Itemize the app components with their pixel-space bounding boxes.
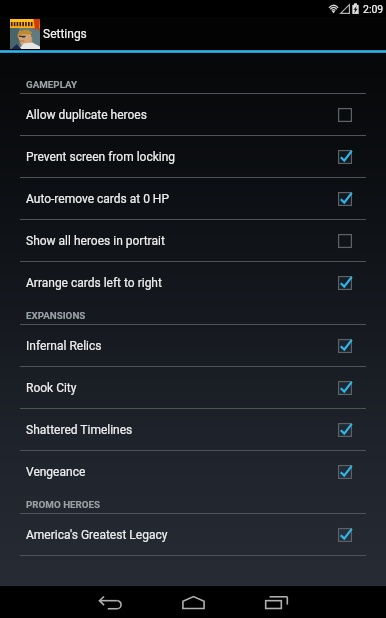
- button[interactable]: America's Greatest Legacy: [0, 514, 386, 555]
- staticText: Rook City: [26, 381, 77, 395]
- button[interactable]: Settings: [0, 17, 386, 50]
- staticText: Arrange cards left to right: [26, 276, 162, 290]
- button[interactable]: Prevent screen from locking: [0, 136, 386, 177]
- button[interactable]: Rook City: [0, 367, 386, 408]
- staticText: Infernal Relics: [26, 339, 102, 353]
- button[interactable]: Vengeance: [0, 451, 386, 492]
- staticText: Allow duplicate heroes: [26, 108, 147, 122]
- staticText: Prevent screen from locking: [26, 150, 176, 164]
- staticText: Auto-remove cards at 0 HP: [26, 192, 170, 206]
- button[interactable]: Back: [69, 586, 152, 618]
- button[interactable]: Recent apps: [235, 586, 318, 618]
- button[interactable]: Auto-remove cards at 0 HP: [0, 178, 386, 219]
- staticText: EXPANSIONS: [26, 310, 86, 321]
- button[interactable]: Shattered Timelines: [0, 409, 386, 450]
- staticText: GAMEPLAY: [26, 79, 78, 90]
- button[interactable]: Arrange cards left to right: [0, 262, 386, 303]
- button[interactable]: Allow duplicate heroes: [0, 94, 386, 135]
- staticText: PROMO HEROES: [26, 499, 101, 510]
- staticText: Settings: [43, 27, 87, 41]
- staticText: Vengeance: [26, 465, 86, 479]
- staticText: America's Greatest Legacy: [26, 528, 168, 542]
- button[interactable]: Show all heroes in portrait: [0, 220, 386, 261]
- staticText: Shattered Timelines: [26, 423, 133, 437]
- button[interactable]: Infernal Relics: [0, 325, 386, 366]
- button[interactable]: Home: [152, 586, 235, 618]
- staticText: 2:09: [363, 3, 384, 15]
- staticText: Show all heroes in portrait: [26, 234, 165, 248]
